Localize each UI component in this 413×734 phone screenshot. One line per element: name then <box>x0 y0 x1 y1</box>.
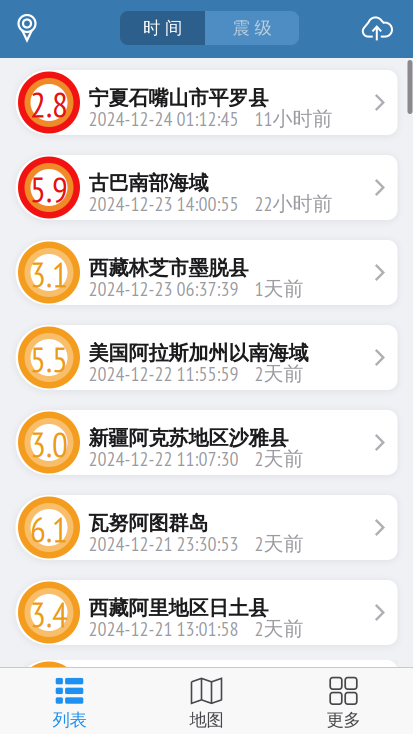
staticText: 5.5 <box>30 337 68 382</box>
button[interactable]: 5.9 <box>15 155 397 220</box>
staticText: 11小时前 <box>254 106 332 131</box>
button[interactable]: 2.8 <box>15 70 397 135</box>
staticText: 3.4 <box>30 592 68 637</box>
staticText: 3.2 <box>30 672 68 717</box>
button[interactable]: 列表 <box>1 674 138 734</box>
staticText: 地图 <box>189 709 223 731</box>
staticText: 更多 <box>326 709 360 731</box>
staticText: 5.9 <box>30 167 68 212</box>
staticText: 3.1 <box>30 252 68 297</box>
button[interactable]: 3.4 <box>15 580 397 645</box>
staticText: 瓦努阿图群岛 <box>88 511 208 535</box>
staticText: 时 间 <box>143 17 182 39</box>
button[interactable]: Location <box>7 8 47 48</box>
staticText: 2024-12-23 14:00:55 <box>88 191 238 216</box>
button[interactable]: 3.1 <box>15 240 397 305</box>
staticText: 1天前 <box>254 276 303 301</box>
staticText: 2天前 <box>254 446 303 471</box>
button[interactable]: 更多 <box>275 674 412 734</box>
staticText: 西藏林芝市墨脱县 <box>88 256 248 280</box>
staticText: 2024-12-22 11:07:30 <box>88 446 238 471</box>
staticText: 西藏阿里地区日土县 <box>88 596 268 620</box>
staticText: 美国阿拉斯加州以南海域 <box>88 341 308 365</box>
button[interactable]: Upload <box>357 8 397 48</box>
button[interactable]: 6.1 <box>15 495 397 560</box>
staticText: 2天前 <box>254 616 303 641</box>
staticText: 22小时前 <box>254 191 332 216</box>
staticText: 2024-12-23 06:37:39 <box>88 276 238 301</box>
staticText: 宁夏石嘴山市平罗县 <box>88 86 268 110</box>
staticText: 6.1 <box>30 507 68 552</box>
staticText: 2.8 <box>30 82 68 127</box>
staticText: 震 级 <box>232 17 271 39</box>
button[interactable]: 3.0 <box>15 410 397 475</box>
button[interactable]: 3.2 <box>15 660 397 725</box>
button[interactable]: 5.5 <box>15 325 397 390</box>
button[interactable]: 震 级 <box>205 11 299 45</box>
staticText: 2024-12-24 01:12:45 <box>88 106 238 131</box>
button[interactable]: 时 间 <box>120 11 205 45</box>
button[interactable]: 地图 <box>138 674 275 734</box>
staticText: 2024-12-21 13:01:58 <box>88 616 238 641</box>
staticText: 古巴南部海域 <box>88 171 208 195</box>
staticText: 新疆阿克苏地区沙雅县 <box>88 426 288 450</box>
staticText: 2天前 <box>254 531 303 556</box>
staticText: 2024-12-21 23:30:53 <box>88 531 238 556</box>
staticText: 列表 <box>52 709 86 731</box>
staticText: 2天前 <box>254 361 303 386</box>
staticText: 3.0 <box>30 422 68 467</box>
staticText: 2024-12-22 11:55:59 <box>88 361 238 386</box>
